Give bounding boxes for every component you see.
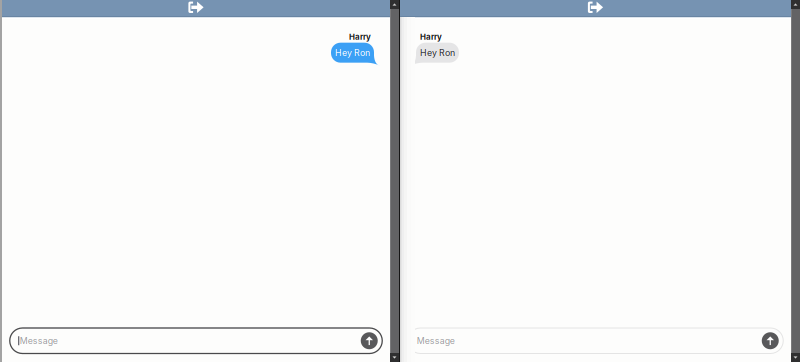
button[interactable]: Scroll down bbox=[390, 353, 399, 362]
staticText: Hey Ron bbox=[420, 47, 455, 58]
staticText: Hey Ron bbox=[335, 47, 370, 58]
staticText: Message bbox=[20, 335, 58, 346]
staticText: Harry bbox=[349, 32, 371, 42]
button[interactable]: Scroll up bbox=[390, 0, 399, 9]
button[interactable]: Send message bbox=[361, 332, 378, 349]
staticText: Harry bbox=[420, 32, 442, 42]
button[interactable]: Sign out bbox=[400, 0, 791, 17]
button[interactable]: Scroll up bbox=[791, 0, 800, 9]
button[interactable]: Send message bbox=[762, 332, 779, 349]
button[interactable]: Scroll down bbox=[791, 353, 800, 362]
button[interactable]: Sign out bbox=[2, 0, 390, 17]
staticText: Message bbox=[417, 335, 455, 346]
